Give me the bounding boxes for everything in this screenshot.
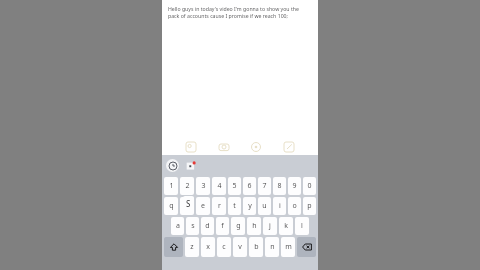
button[interactable]: 2 <box>180 177 194 195</box>
button[interactable]: j <box>263 217 277 235</box>
button[interactable]: t <box>228 197 241 215</box>
staticText: b <box>254 242 259 252</box>
button[interactable]: 0 <box>303 177 316 195</box>
button[interactable]: r <box>212 197 226 215</box>
staticText: i <box>279 201 281 211</box>
button[interactable]: v <box>233 237 247 257</box>
button[interactable]: 6 <box>243 177 256 195</box>
staticText: 0 <box>307 181 312 191</box>
button[interactable]: d <box>201 217 214 235</box>
staticText: 2 <box>185 181 190 191</box>
button[interactable]: 9 <box>288 177 301 195</box>
staticText: n <box>270 242 275 252</box>
button[interactable]: q <box>164 197 178 215</box>
button[interactable]: p <box>303 197 316 215</box>
staticText: 3 <box>201 181 206 191</box>
button[interactable]: y <box>243 197 256 215</box>
button[interactable]: Stickers <box>185 160 197 172</box>
button[interactable]: x <box>201 237 215 257</box>
staticText: e <box>201 201 205 211</box>
staticText: k <box>284 221 288 231</box>
button[interactable]: i <box>273 197 286 215</box>
staticText: t <box>233 201 236 211</box>
staticText: 8 <box>277 181 282 191</box>
staticText: l <box>301 221 303 231</box>
button[interactable]: b <box>249 237 263 257</box>
staticText: y <box>248 201 252 211</box>
button[interactable]: Voice <box>249 140 263 154</box>
button[interactable]: h <box>247 217 261 235</box>
button[interactable]: Camera <box>217 140 231 154</box>
staticText: x <box>206 242 210 252</box>
button[interactable]: 7 <box>258 177 271 195</box>
button[interactable]: o <box>288 197 301 215</box>
staticText: o <box>292 201 297 211</box>
staticText: u <box>262 201 267 211</box>
button[interactable]: 3 <box>196 177 210 195</box>
staticText: g <box>236 221 241 231</box>
staticText: 7 <box>262 181 267 191</box>
button[interactable]: n <box>265 237 279 257</box>
button[interactable]: 4 <box>212 177 226 195</box>
staticText: h <box>252 221 257 231</box>
button[interactable]: Recent <box>166 159 179 172</box>
staticText: 4 <box>217 181 222 191</box>
button[interactable]: Edit <box>282 140 296 154</box>
button[interactable]: k <box>279 217 293 235</box>
button[interactable]: m <box>281 237 295 257</box>
button[interactable]: w <box>180 197 194 215</box>
staticText: j <box>269 221 271 231</box>
button[interactable]: a <box>171 217 184 235</box>
button[interactable]: Gallery <box>184 140 198 154</box>
staticText: S <box>186 198 191 209</box>
button[interactable]: z <box>185 237 199 257</box>
staticText: a <box>176 221 180 231</box>
button[interactable]: s <box>186 217 199 235</box>
button[interactable]: c <box>217 237 231 257</box>
staticText: 6 <box>247 181 252 191</box>
staticText: v <box>238 242 242 252</box>
button[interactable]: 5 <box>228 177 241 195</box>
staticText: 5 <box>232 181 237 191</box>
staticText: s <box>191 221 195 231</box>
staticText: 9 <box>292 181 297 191</box>
staticText: q <box>169 201 174 211</box>
staticText: p <box>307 201 312 211</box>
staticText: f <box>221 221 224 231</box>
staticText: d <box>205 221 210 231</box>
staticText: w <box>184 201 190 211</box>
button[interactable]: 1 <box>164 177 178 195</box>
staticText: 1 <box>169 181 174 191</box>
staticText: c <box>222 242 226 252</box>
button[interactable]: Shift <box>164 237 183 257</box>
button[interactable]: g <box>231 217 245 235</box>
button[interactable]: l <box>295 217 309 235</box>
staticText: z <box>190 242 194 252</box>
button[interactable]: f <box>216 217 229 235</box>
staticText: m <box>285 242 292 252</box>
staticText: r <box>218 201 221 211</box>
staticText: Hello guys in today's video I'm gonna to… <box>168 5 310 19</box>
button[interactable]: e <box>196 197 210 215</box>
button[interactable]: Backspace <box>297 237 316 257</box>
button[interactable]: 8 <box>273 177 286 195</box>
button[interactable]: u <box>258 197 271 215</box>
